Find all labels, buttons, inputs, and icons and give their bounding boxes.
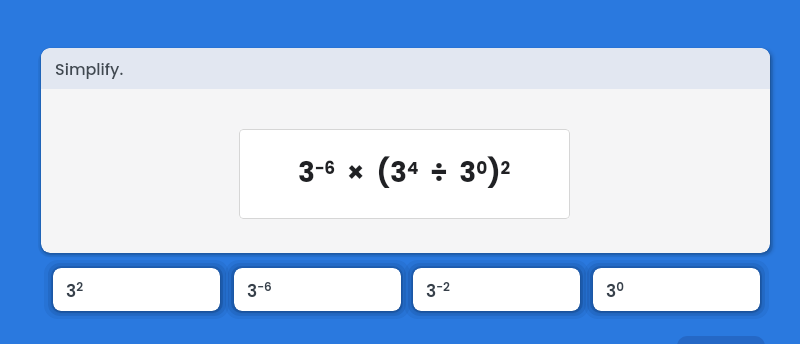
staticText: 32 — [66, 278, 84, 302]
button[interactable]: 30 — [593, 268, 760, 311]
staticText: Simplify. — [55, 58, 124, 80]
button[interactable]: 3−2 — [413, 268, 580, 311]
button[interactable]: 3−6 — [234, 268, 401, 311]
staticText: 3−6 × (34 ÷ 30)2 — [298, 153, 511, 192]
staticText: 3−2 — [426, 278, 450, 302]
staticText: 30 — [606, 278, 624, 302]
button[interactable]: 32 — [53, 268, 220, 311]
staticText: 3−6 — [247, 278, 272, 302]
button[interactable]: 3−6 × (34 ÷ 30)2 — [239, 129, 570, 219]
